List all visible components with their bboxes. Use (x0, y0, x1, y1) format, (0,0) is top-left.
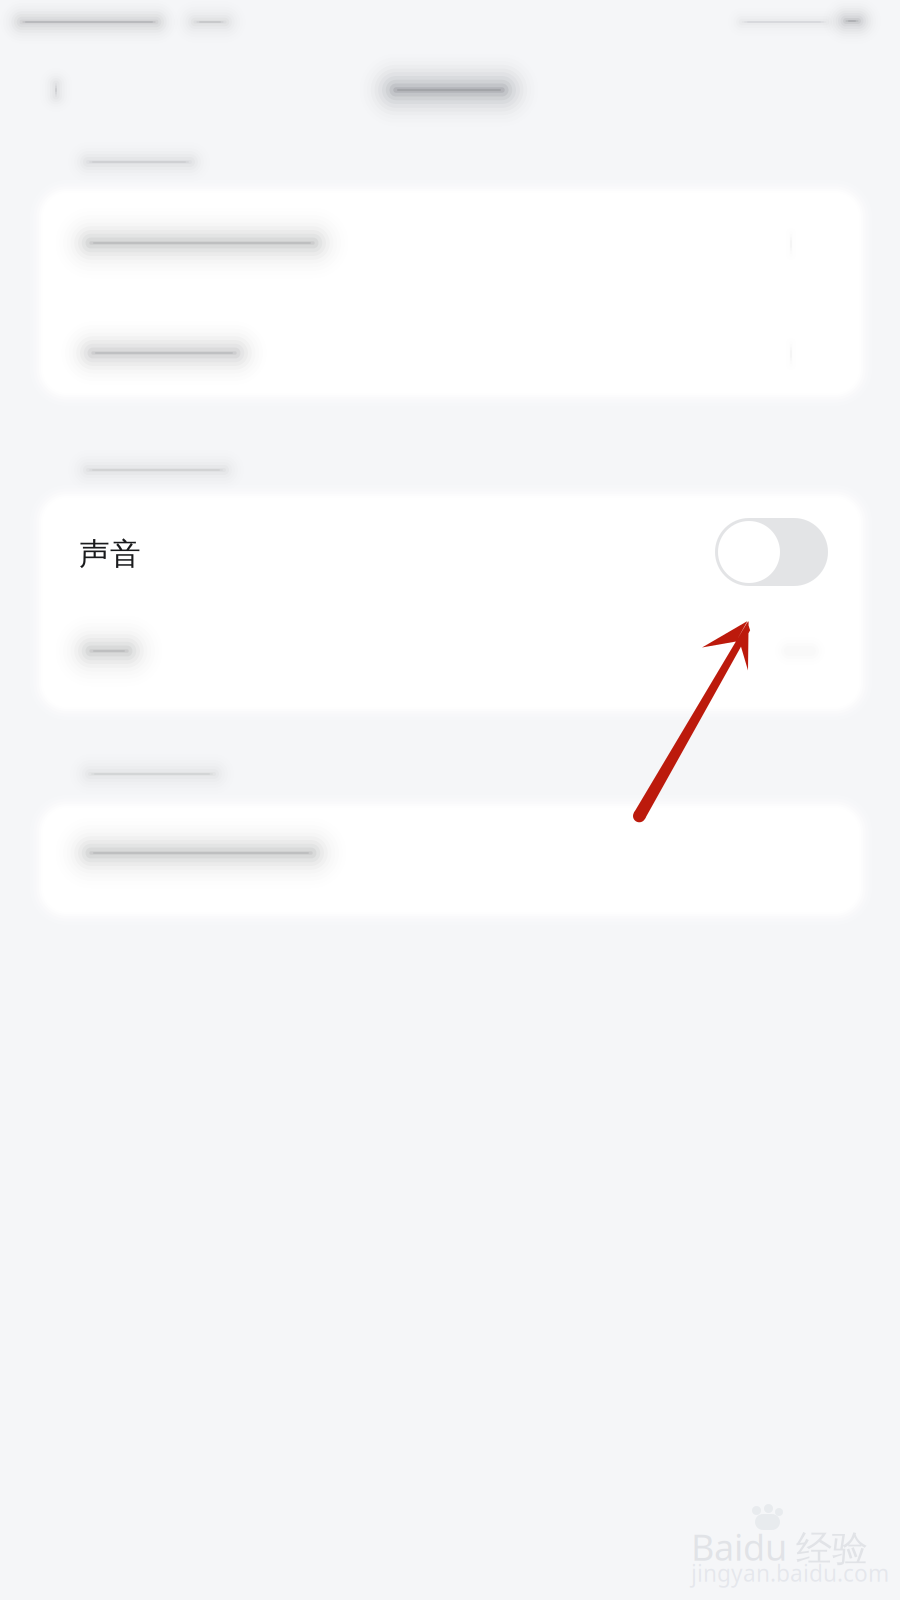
staticText: 声音 (79, 535, 141, 573)
staticText: Baidu 经验 (691, 1523, 868, 1571)
staticText: jingyan.baidu.com (691, 1558, 889, 1588)
button[interactable]: 声音 (43, 506, 859, 598)
